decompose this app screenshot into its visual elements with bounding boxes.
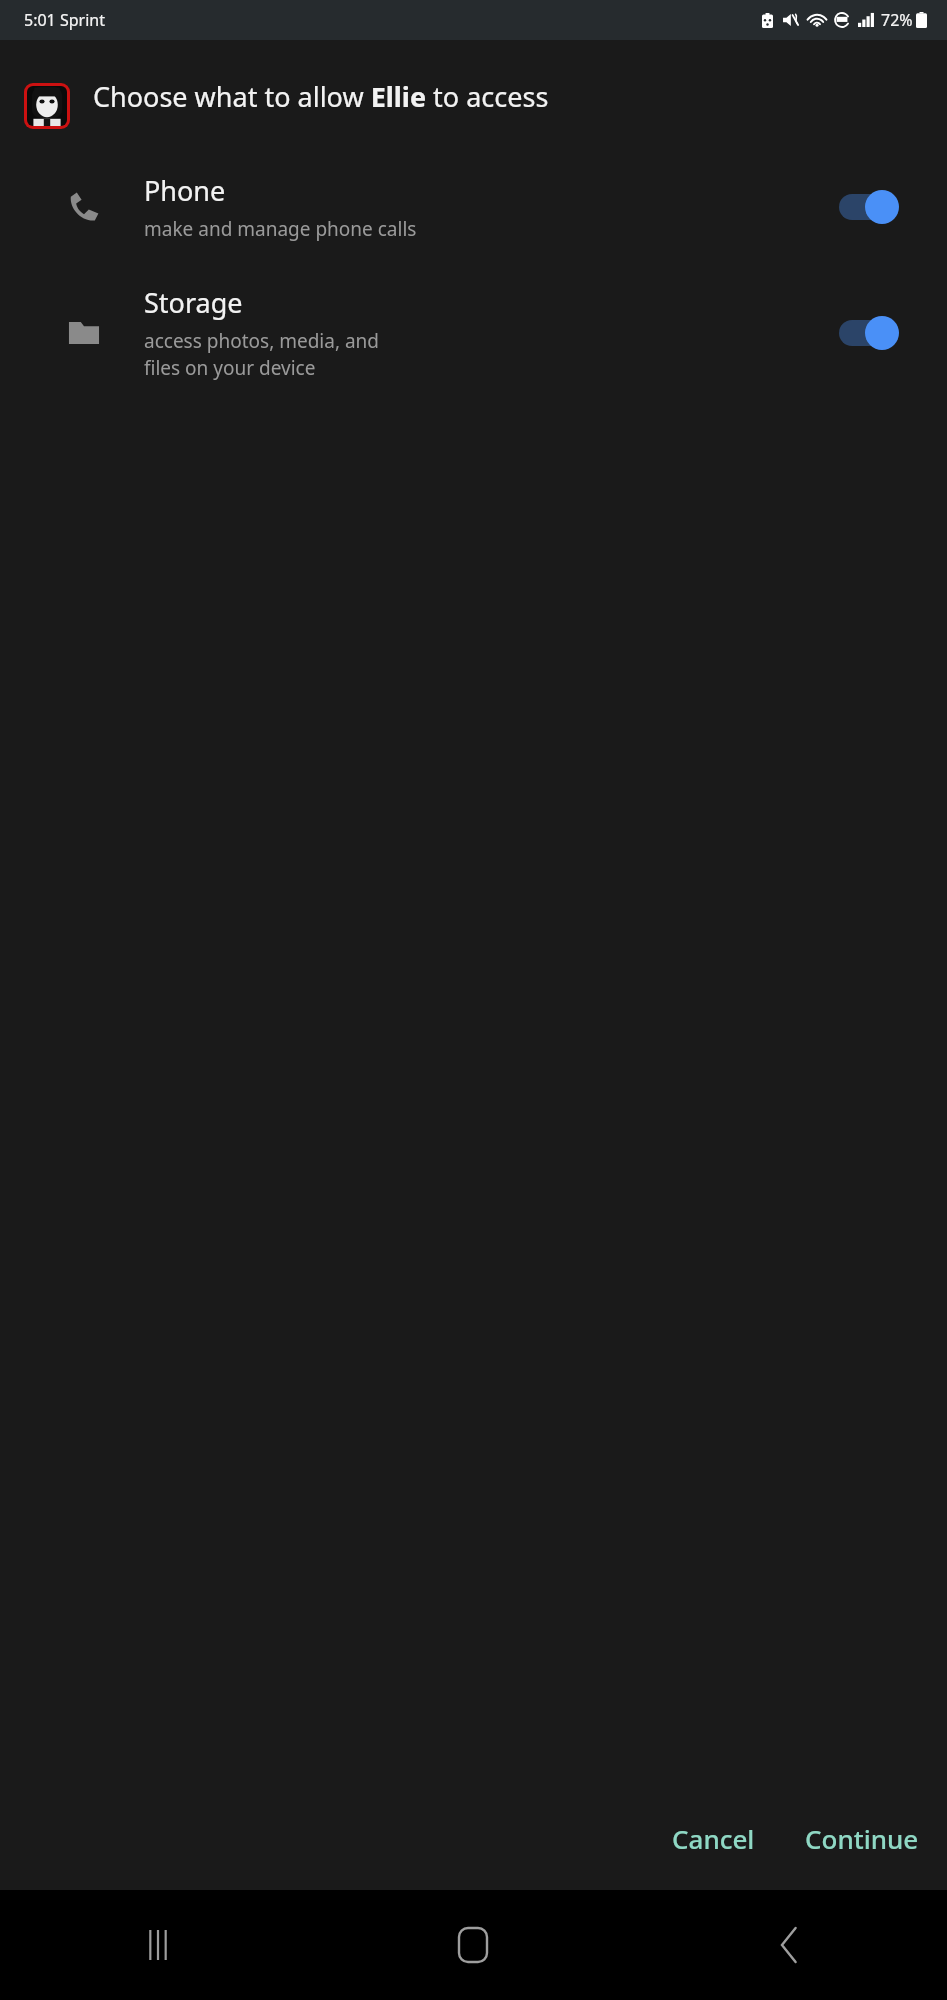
button[interactable]: Cancel <box>654 1809 773 1868</box>
button[interactable]: Recents <box>0 1890 315 2000</box>
button[interactable]: Permission toggle, on <box>839 183 923 231</box>
staticText: Continue <box>805 1821 919 1856</box>
button[interactable]: Storage <box>0 284 947 381</box>
staticText: 72% <box>881 9 913 31</box>
staticText: 5:01 Sprint <box>24 9 105 31</box>
staticText: access photos, media, and files on your … <box>144 328 380 381</box>
button[interactable]: Continue <box>787 1809 937 1868</box>
staticText: make and manage phone calls <box>144 216 417 242</box>
staticText: Cancel <box>672 1821 755 1856</box>
button[interactable]: Home <box>315 1890 631 2000</box>
button[interactable]: Back <box>631 1890 947 2000</box>
staticText: Phone <box>144 172 226 209</box>
staticText: Storage <box>144 284 243 321</box>
staticText: Choose what to allow Ellie to access <box>93 78 549 115</box>
button[interactable]: Permission toggle, on <box>839 309 923 357</box>
button[interactable]: Phone <box>0 172 947 242</box>
